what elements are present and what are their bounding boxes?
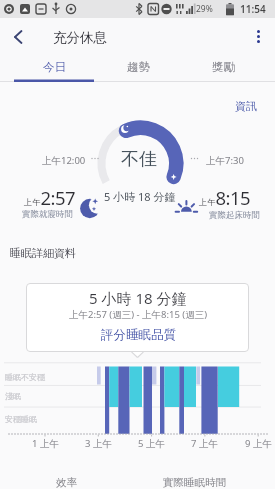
button[interactable]: 實際睡眠時間 <box>134 468 254 489</box>
staticText: 安穩睡眠 <box>5 414 37 424</box>
button[interactable]: 今日 <box>9 52 99 82</box>
staticText: 獎勵 <box>212 60 235 74</box>
button[interactable]: 獎勵 <box>178 52 268 82</box>
staticText: 9 上午 <box>245 437 272 450</box>
staticText: 11:54 <box>240 2 266 16</box>
staticText: 5 小時 18 分鐘 <box>104 189 176 204</box>
staticText: 淺眠 <box>5 391 21 401</box>
staticText: 趨勢 <box>127 60 150 74</box>
staticText: 29% <box>196 3 213 15</box>
staticText: 效率 <box>56 476 77 489</box>
button[interactable]: 效率 <box>26 468 106 489</box>
staticText: 3 上午 <box>85 437 112 450</box>
staticText: 上午2:57 <box>24 185 76 210</box>
button[interactable]: 資訊 <box>216 92 275 120</box>
staticText: 上午7:30 <box>206 154 244 167</box>
button[interactable] <box>4 22 34 52</box>
staticText: 上午12:00 <box>42 154 86 167</box>
staticText: 睡眠不安穩 <box>5 372 45 382</box>
staticText: 不佳 <box>121 148 157 171</box>
staticText: 評分睡眠品質 <box>101 327 176 343</box>
staticText: 7 上午 <box>191 437 218 450</box>
button[interactable]: 趨勢 <box>93 52 183 82</box>
staticText: 充分休息 <box>53 29 107 46</box>
staticText: 實際起床時間 <box>209 210 260 221</box>
staticText: 上午8:15 <box>199 185 251 210</box>
staticText: 上午2:57 (週三) - 上午8:15 (週三) <box>69 308 208 321</box>
button[interactable] <box>246 22 272 52</box>
staticText: 5 小時 18 分鐘 <box>89 288 187 308</box>
staticText: 資訊 <box>235 99 257 113</box>
button[interactable]: 評分睡眠品質 <box>58 321 218 349</box>
staticText: 實際睡眠時間 <box>163 476 226 489</box>
staticText: 今日 <box>43 60 66 74</box>
staticText: 1 上午 <box>32 437 59 450</box>
staticText: 5 上午 <box>138 437 165 450</box>
staticText: 睡眠詳細資料 <box>10 246 76 260</box>
staticText: 實際就寢時間 <box>22 209 73 220</box>
